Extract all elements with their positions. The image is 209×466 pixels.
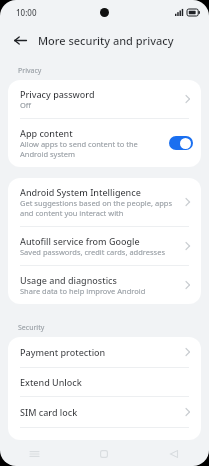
staticText: Security (18, 323, 45, 333)
button[interactable]: Payment protection (8, 337, 201, 367)
staticText: SIM card lock (20, 406, 78, 418)
staticText: 10:00 (16, 7, 37, 18)
staticText: Android System Intelligence (20, 186, 141, 198)
button[interactable]: Privacy password (8, 80, 201, 118)
staticText: Privacy password (20, 88, 95, 100)
button[interactable]: App content (8, 119, 201, 167)
button[interactable]: Back (9, 29, 31, 51)
staticText: More security and privacy (38, 33, 174, 48)
staticText: Privacy (18, 66, 42, 76)
button[interactable]: SIM card lock (8, 397, 201, 427)
button[interactable]: App content switch (169, 136, 193, 150)
button[interactable]: Recent apps (0, 442, 69, 466)
button[interactable]: Back (139, 442, 209, 466)
staticText: App content (20, 127, 73, 139)
staticText: Payment protection (20, 346, 106, 358)
staticText: Extend Unlock (20, 376, 82, 388)
staticText: Saved passwords, credit cards, addresses (20, 247, 165, 257)
staticText: Allow apps to send content to the Androi… (20, 139, 138, 159)
staticText: Autofill service from Google (20, 235, 140, 247)
button[interactable]: Extend Unlock (8, 368, 201, 396)
staticText: Off (20, 100, 32, 110)
button[interactable]: Android System Intelligence (8, 178, 201, 226)
button[interactable]: Usage and diagnostics (8, 266, 201, 304)
staticText: Share data to help improve Android (20, 286, 146, 296)
staticText: Get suggestions based on the people, app… (20, 198, 172, 218)
staticText: Usage and diagnostics (20, 274, 117, 286)
button[interactable]: Autofill service from Google (8, 227, 201, 265)
